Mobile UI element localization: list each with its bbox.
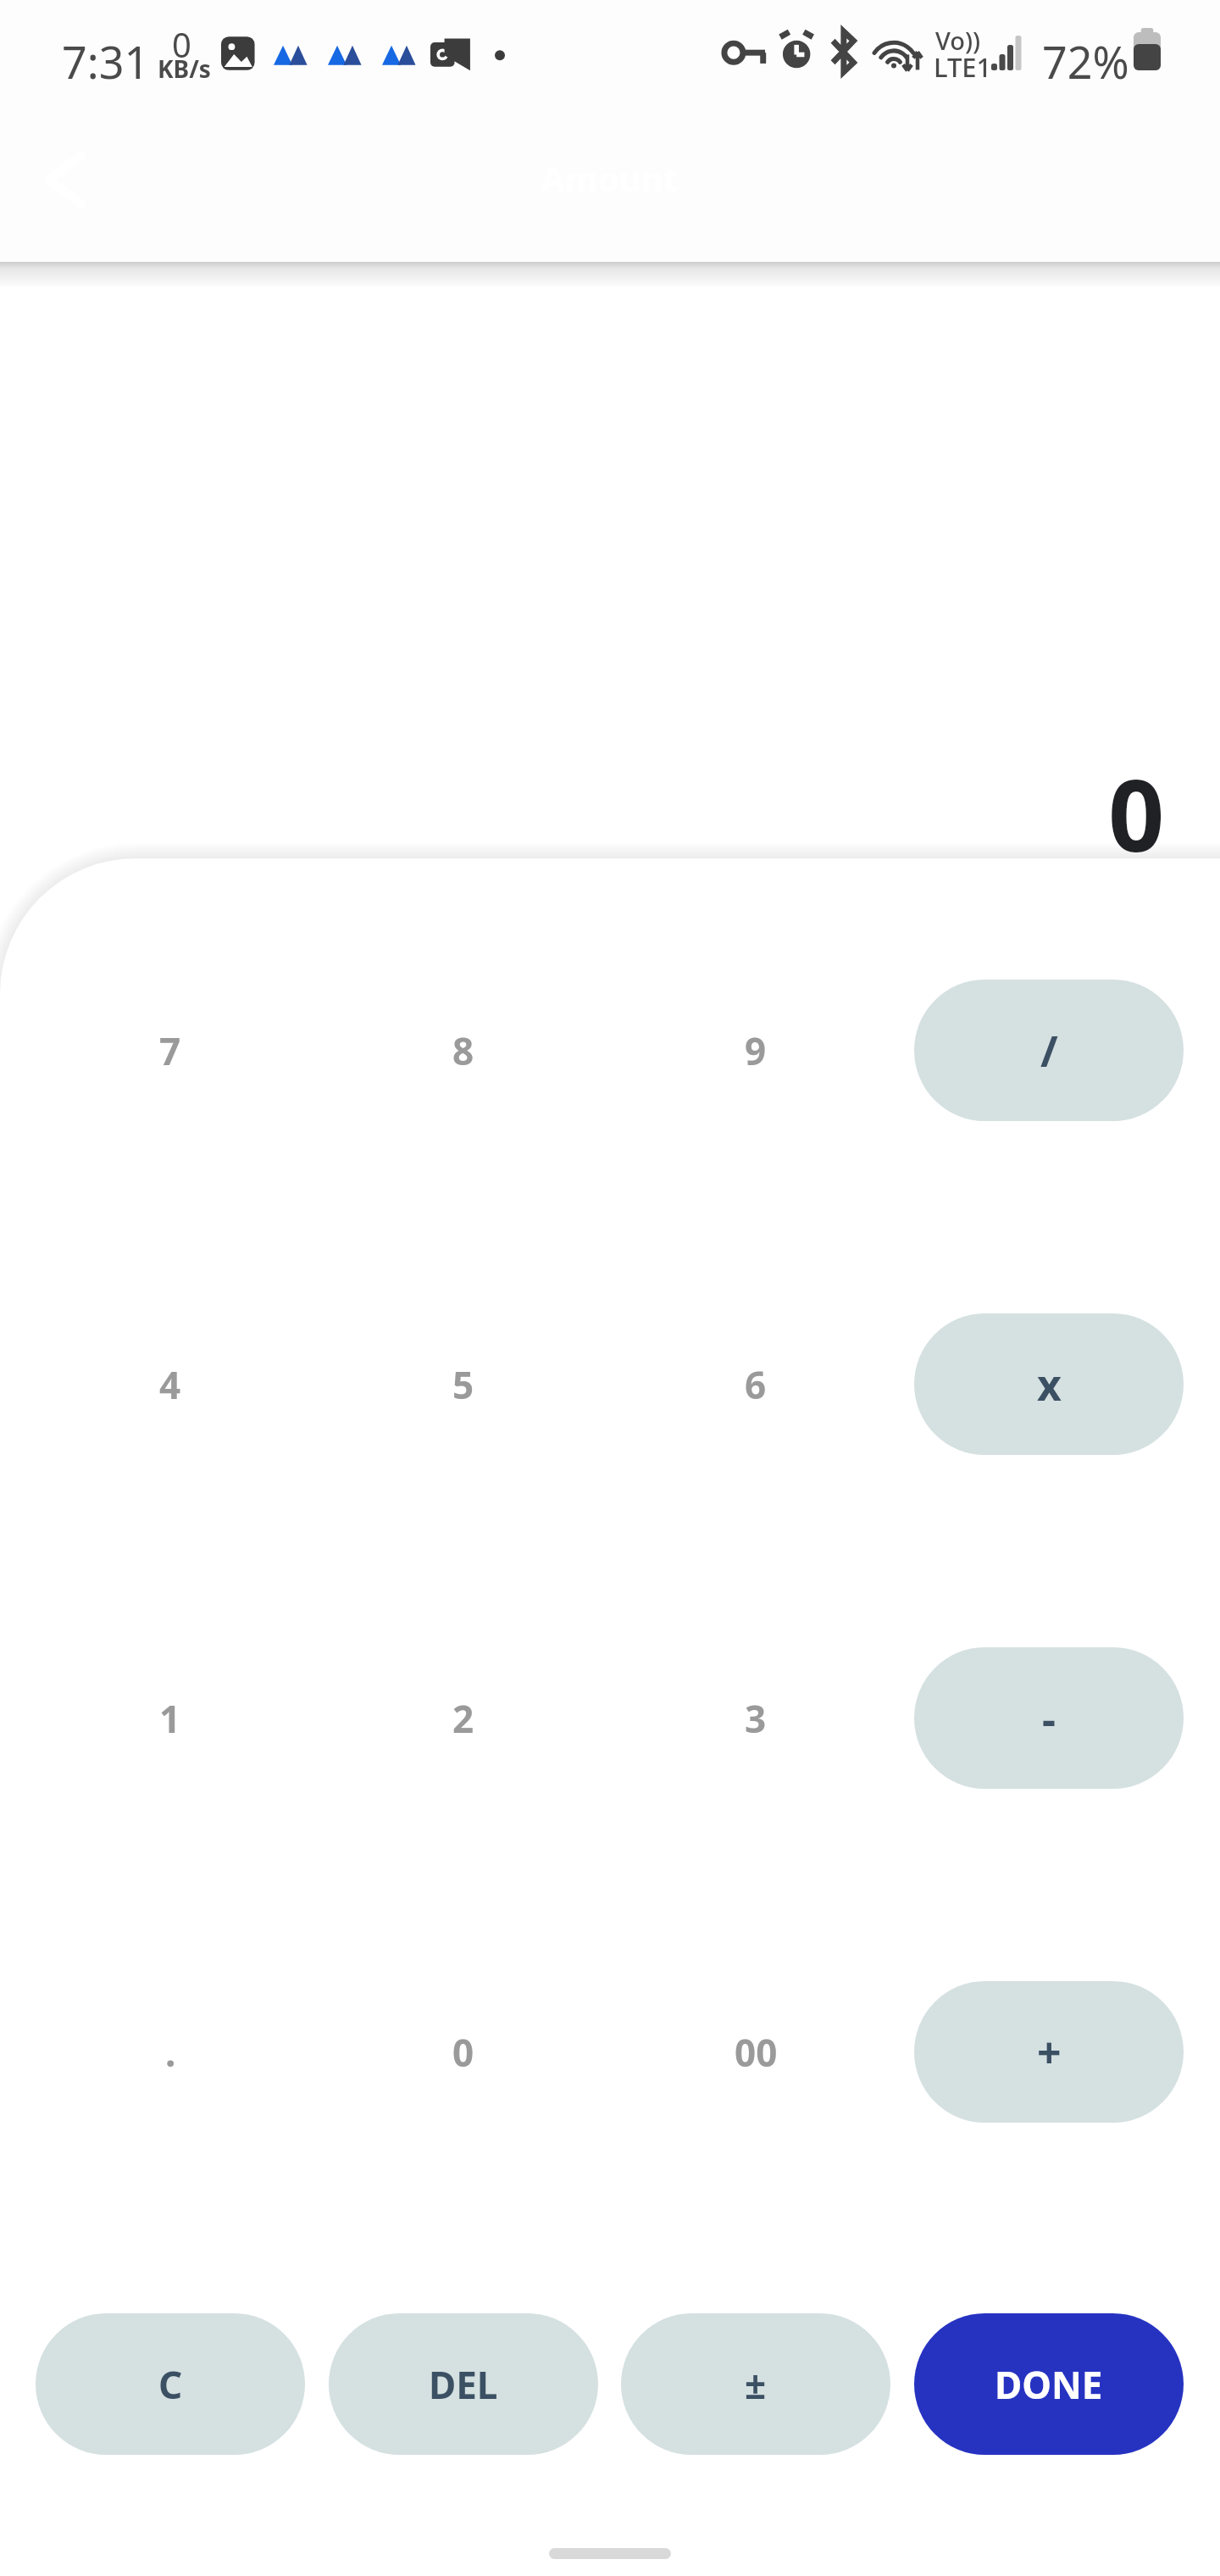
button[interactable]: 9 xyxy=(621,980,890,1121)
staticText: 9 xyxy=(745,1025,767,1076)
button[interactable]: 2 xyxy=(329,1647,598,1789)
button[interactable]: 8 xyxy=(329,980,598,1121)
button[interactable]: 00 xyxy=(621,1981,890,2123)
staticText: 7:31 xyxy=(62,31,150,92)
button[interactable]: 6 xyxy=(621,1313,890,1455)
staticText: 7 xyxy=(159,1025,181,1076)
button[interactable]: 0 xyxy=(329,1981,598,2123)
staticText: 1 xyxy=(159,1693,181,1744)
staticText: LTE1 xyxy=(934,49,992,85)
staticText: 8 xyxy=(452,1025,474,1076)
staticText: + xyxy=(1037,2024,1062,2081)
staticText: 00 xyxy=(735,2027,778,2078)
staticText: DEL xyxy=(429,2359,498,2410)
staticText: 4 xyxy=(159,1359,181,1410)
button[interactable]: - xyxy=(914,1647,1184,1789)
button[interactable]: / xyxy=(914,980,1184,1121)
button[interactable]: 1 xyxy=(36,1647,305,1789)
staticText: 2 xyxy=(452,1693,474,1744)
button[interactable]: DONE xyxy=(914,2313,1184,2455)
staticText: - xyxy=(1042,1690,1056,1747)
button[interactable]: DEL xyxy=(329,2313,598,2455)
button[interactable]: C xyxy=(36,2313,305,2455)
button[interactable]: x xyxy=(914,1313,1184,1455)
button[interactable]: ± xyxy=(621,2313,890,2455)
button[interactable]: 3 xyxy=(621,1647,890,1789)
staticText: 0 xyxy=(1108,747,1165,880)
button[interactable]: 7 xyxy=(36,980,305,1121)
button[interactable]: 4 xyxy=(36,1313,305,1455)
staticText: 5 xyxy=(452,1359,474,1410)
staticText: DONE xyxy=(995,2359,1103,2410)
other: Home xyxy=(549,2548,671,2559)
staticText: KB/s xyxy=(158,53,211,85)
staticText: x xyxy=(1037,1356,1062,1413)
staticText: 3 xyxy=(745,1693,767,1744)
staticText: 0 xyxy=(452,2027,474,2078)
staticText: 6 xyxy=(745,1359,767,1410)
staticText: . xyxy=(165,2027,176,2078)
button[interactable]: 5 xyxy=(329,1313,598,1455)
staticText: 72% xyxy=(1042,31,1129,92)
staticText: ± xyxy=(745,2359,767,2410)
staticText: / xyxy=(1040,1022,1058,1080)
staticText: C xyxy=(158,2359,183,2410)
button[interactable]: + xyxy=(914,1981,1184,2123)
staticText: Vo)) xyxy=(935,24,981,57)
staticText: 0 xyxy=(172,21,191,67)
